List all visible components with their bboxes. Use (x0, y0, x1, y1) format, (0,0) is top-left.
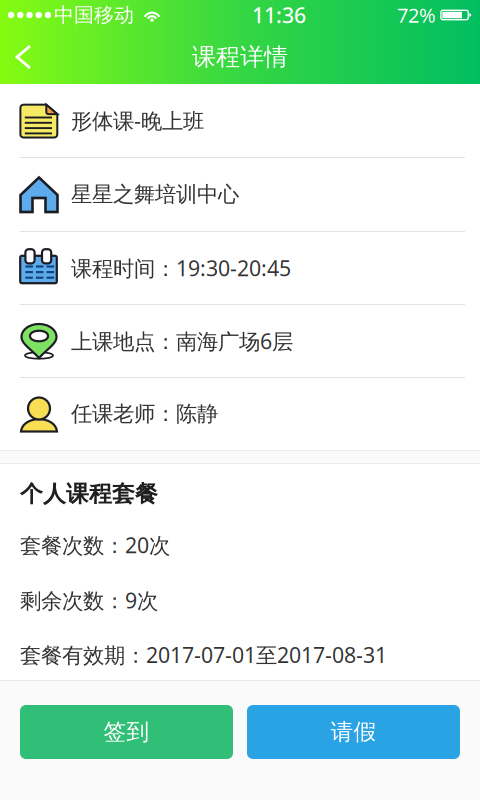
button[interactable]: 签到 (20, 705, 233, 759)
staticText: 星星之舞培训中心 (71, 181, 239, 208)
staticText: 课程时间：19:30-20:45 (71, 254, 291, 282)
button[interactable]: 任课老师：陈静 (0, 378, 480, 450)
button[interactable]: Back (0, 35, 54, 79)
button[interactable]: 星星之舞培训中心 (0, 158, 480, 232)
staticText: 任课老师：陈静 (71, 401, 218, 427)
staticText: 72% (397, 2, 436, 28)
button[interactable]: 课程时间：19:30-20:45 (0, 232, 480, 305)
button[interactable]: 上课地点：南海广场6层 (0, 305, 480, 378)
button[interactable]: 请假 (247, 705, 460, 759)
staticText: 上课地点：南海广场6层 (71, 327, 293, 355)
staticText: 签到 (103, 718, 149, 746)
staticText: 个人课程套餐 (20, 480, 158, 508)
staticText: 剩余次数：9次 (20, 586, 158, 614)
staticText: 中国移动 (54, 3, 134, 27)
button[interactable]: 形体课-晚上班 (0, 84, 480, 158)
staticText: 11:36 (252, 1, 306, 29)
staticText: 请假 (330, 718, 376, 746)
staticText: 套餐次数：20次 (20, 531, 170, 559)
staticText: 课程详情 (192, 42, 288, 72)
staticText: 套餐有效期：2017-07-01至2017-08-31 (20, 640, 387, 669)
staticText: 形体课-晚上班 (71, 106, 204, 135)
